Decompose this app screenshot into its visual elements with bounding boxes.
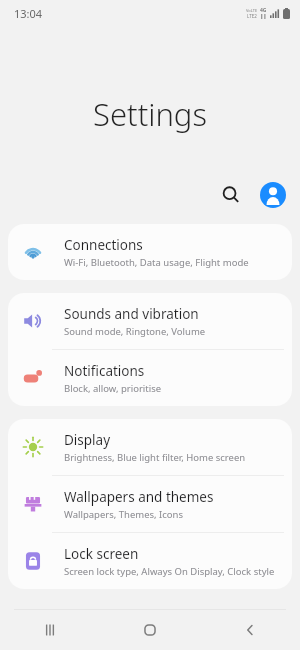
button[interactable]: Notifications [8, 350, 292, 406]
staticText: Brightness, Blue light filter, Home scre… [64, 451, 246, 464]
staticText: LTE2 [247, 13, 257, 19]
staticText: 13:04 [14, 6, 43, 21]
staticText: Wallpapers, Themes, Icons [64, 508, 184, 521]
button[interactable]: Back [200, 610, 300, 650]
staticText: Settings [93, 93, 207, 135]
staticText: Wi-Fi, Bluetooth, Data usage, Flight mod… [64, 256, 249, 269]
staticText: Sounds and vibration [64, 305, 199, 323]
staticText: Wallpapers and themes [64, 488, 214, 506]
button[interactable]: Account [260, 182, 286, 208]
button[interactable]: Sounds and vibration [8, 293, 292, 349]
button[interactable]: Display [8, 419, 292, 475]
button[interactable]: Search [214, 178, 248, 212]
staticText: VoLTE [246, 8, 258, 13]
button[interactable]: Wallpapers and themes [8, 476, 292, 532]
staticText: Block, allow, prioritise [64, 382, 162, 395]
staticText: 4G [260, 7, 267, 14]
staticText: Screen lock type, Always On Display, Clo… [64, 565, 275, 578]
staticText: Notifications [64, 362, 145, 380]
staticText: Connections [64, 236, 143, 254]
staticText: Display [64, 431, 111, 449]
button[interactable]: Connections [8, 224, 292, 280]
staticText: Lock screen [64, 545, 139, 563]
button[interactable]: Home [100, 610, 200, 650]
staticText: Sound mode, Ringtone, Volume [64, 325, 206, 338]
button[interactable]: Lock screen [8, 533, 292, 589]
button[interactable]: Recents [0, 610, 100, 650]
